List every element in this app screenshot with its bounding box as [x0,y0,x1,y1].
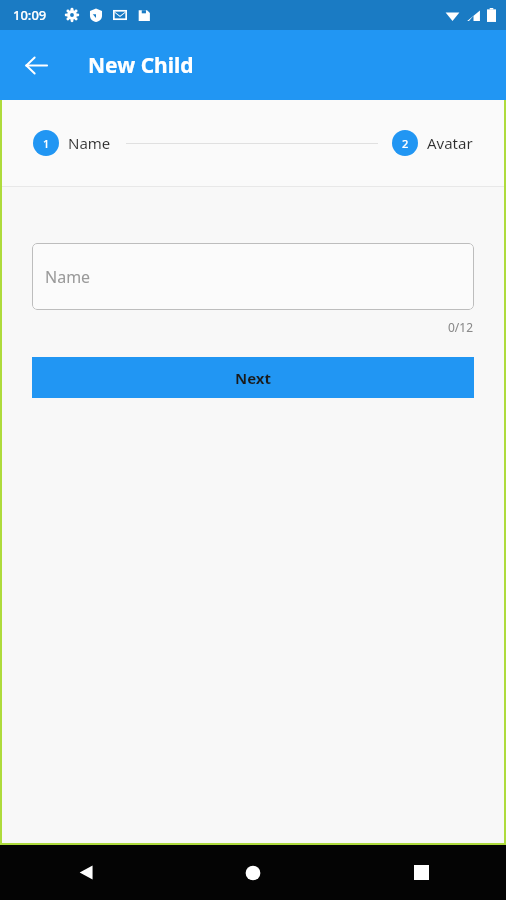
button[interactable]: Back [0,845,168,900]
staticText: Name [68,133,111,153]
staticText: 0/12 [447,319,473,335]
button[interactable]: Recent apps [337,845,506,900]
button[interactable]: Name [32,243,474,310]
staticText: 10:09 [13,6,47,24]
staticText: 2 [402,136,409,151]
staticText: 1 [43,136,50,151]
staticText: New Child [88,51,194,80]
button[interactable]: Home [168,845,337,900]
button[interactable]: Next [32,357,474,398]
button[interactable]: Back [12,41,60,89]
staticText: Name [45,266,91,288]
button[interactable]: 2 [392,130,473,156]
staticText: Avatar [427,133,473,153]
button[interactable]: 1 [33,130,111,156]
staticText: Next [235,368,272,388]
